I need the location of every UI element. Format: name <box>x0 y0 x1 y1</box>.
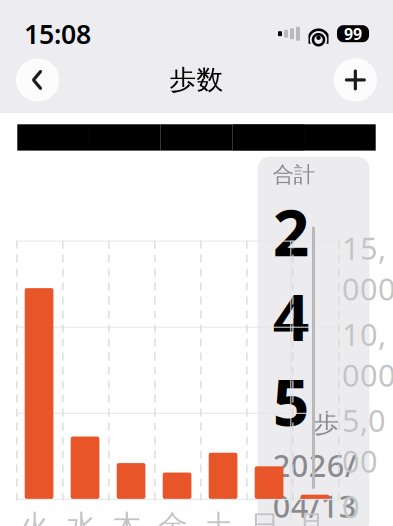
button[interactable]: 日 <box>17 124 89 151</box>
staticText: 歩 <box>314 408 339 439</box>
button[interactable]: 週 <box>89 124 161 151</box>
button[interactable]: 6か月 <box>232 124 304 151</box>
staticText: 6か月 <box>243 124 294 151</box>
staticText: 土 <box>204 508 233 526</box>
staticText: 15:08 <box>24 16 91 51</box>
staticText: 火 <box>20 508 49 526</box>
button[interactable]: 戻る <box>16 58 59 102</box>
staticText: 5,000 <box>342 400 386 481</box>
staticText: 10,000 <box>342 314 393 395</box>
staticText: 水 <box>66 508 95 526</box>
staticText: 木 <box>112 508 141 526</box>
staticText: 月 <box>296 508 325 526</box>
staticText: 15,000 <box>342 228 393 309</box>
staticText: 0 <box>342 486 360 526</box>
staticText: 99 <box>344 23 362 44</box>
staticText: 日 <box>250 508 279 526</box>
button[interactable]: 月 <box>161 124 232 151</box>
staticText: 金 <box>158 508 187 526</box>
staticText: 2026/04/13 <box>273 445 357 526</box>
button[interactable]: 追加 <box>334 58 377 102</box>
button[interactable]: 年 <box>304 124 376 151</box>
staticText: 合計 <box>273 162 315 188</box>
staticText: 245 <box>273 189 310 444</box>
staticText: 歩数 <box>169 64 223 96</box>
